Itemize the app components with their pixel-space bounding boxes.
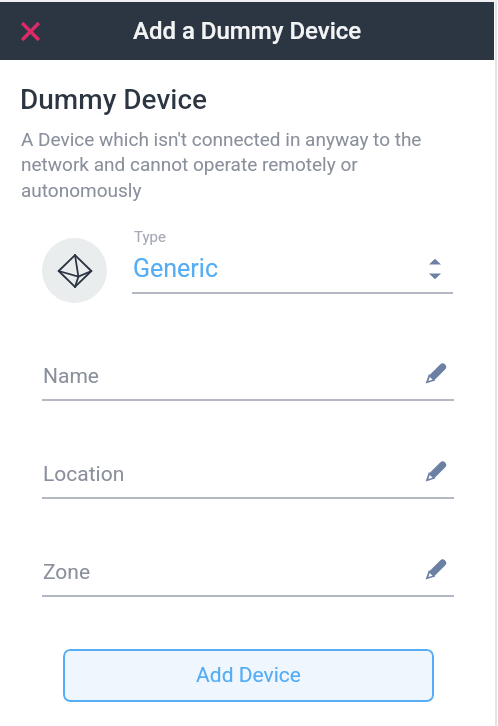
button[interactable]: Zone	[42, 547, 454, 597]
staticText: Type	[134, 228, 166, 246]
staticText: Add a Dummy Device	[133, 17, 362, 45]
button[interactable]: Name	[42, 351, 454, 401]
staticText: Name	[43, 364, 99, 389]
staticText: Add Device	[196, 663, 301, 688]
button[interactable]: Add Device	[63, 649, 434, 702]
staticText: Dummy Device	[20, 83, 208, 116]
staticText: A Device which isn't connected in anyway…	[21, 128, 441, 202]
staticText: Zone	[43, 560, 91, 585]
staticText: Generic	[133, 254, 218, 283]
button[interactable]: Location	[42, 449, 454, 499]
button[interactable]: Type	[132, 228, 453, 294]
button[interactable]: Close	[10, 11, 50, 51]
staticText: Location	[43, 462, 125, 487]
